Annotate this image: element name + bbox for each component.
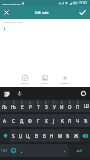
button[interactable]: А xyxy=(0,114,9,127)
button[interactable]: Л xyxy=(66,114,74,127)
staticText: , xyxy=(21,148,22,153)
staticText: Checklist xyxy=(20,82,29,84)
button[interactable]: Ш xyxy=(82,100,90,112)
staticText: 8 xyxy=(61,101,63,105)
staticText: Otero Mobile 3G xyxy=(2,2,21,5)
staticText: Mar 26, 2019, 11:55 xyxy=(4,21,23,24)
button[interactable]: Image xyxy=(35,75,54,84)
button[interactable]: 2 xyxy=(9,100,18,112)
button[interactable]: В xyxy=(32,129,40,142)
staticText: М xyxy=(58,133,63,139)
button[interactable]: Enter xyxy=(68,144,90,157)
staticText: Р xyxy=(29,104,32,110)
button[interactable]: Н xyxy=(48,129,56,142)
staticText: Џ xyxy=(19,133,23,139)
button[interactable]: Save xyxy=(74,6,90,19)
staticText: Ј xyxy=(53,118,55,124)
button[interactable]: Ж xyxy=(72,129,80,142)
button[interactable]: ?123 xyxy=(0,144,9,157)
staticText: Ѕ xyxy=(12,133,15,139)
button[interactable]: Ц xyxy=(24,129,32,142)
staticText: 6 xyxy=(45,101,47,105)
staticText: В xyxy=(35,133,38,139)
button[interactable]: Settings xyxy=(79,89,88,98)
button[interactable]: . xyxy=(60,144,68,157)
staticText: З xyxy=(45,104,48,110)
button[interactable]: 6 xyxy=(42,100,50,112)
staticText: . xyxy=(64,148,65,153)
staticText: Ђ xyxy=(66,133,70,139)
staticText: Image xyxy=(41,82,48,84)
button[interactable]: К xyxy=(58,114,66,127)
button[interactable]: Checklist xyxy=(15,75,34,84)
staticText: Н xyxy=(50,133,54,139)
staticText: Т xyxy=(37,104,40,110)
staticText: ?123 xyxy=(1,149,8,153)
button[interactable]: С xyxy=(9,114,18,127)
staticText: Edit note xyxy=(35,11,49,15)
button[interactable]: Ђ xyxy=(64,129,72,142)
staticText: О xyxy=(68,104,72,110)
button[interactable]: Ф xyxy=(26,114,34,127)
button[interactable]: Ћ xyxy=(82,114,90,127)
button[interactable]: 0 xyxy=(74,100,82,112)
staticText: 3 xyxy=(21,101,23,105)
staticText: Ж xyxy=(74,133,79,139)
staticText: Љ xyxy=(2,104,7,110)
button[interactable]: 8 xyxy=(58,100,66,112)
staticText: 5 xyxy=(37,101,39,105)
staticText: Е xyxy=(21,104,24,110)
button[interactable]: 7 xyxy=(50,100,58,112)
staticText: 9 xyxy=(69,101,71,105)
button[interactable]: Ѕ xyxy=(10,129,17,142)
button[interactable]: Д xyxy=(18,114,26,127)
staticText: У xyxy=(53,104,56,110)
button[interactable]: Emoji xyxy=(9,144,17,157)
button[interactable]: Џ xyxy=(17,129,24,142)
button[interactable]: 4 xyxy=(26,100,34,112)
button[interactable]: Shift xyxy=(0,129,10,142)
staticText: 0 xyxy=(77,101,79,105)
staticText: Ч xyxy=(76,118,80,124)
staticText: Ф xyxy=(28,118,32,124)
button[interactable]: Close xyxy=(0,6,12,19)
staticText: Х xyxy=(45,118,48,124)
staticText: И xyxy=(60,104,64,110)
staticText: 2 xyxy=(13,101,15,105)
staticText: П xyxy=(76,104,80,110)
staticText: К xyxy=(61,118,64,124)
staticText: А xyxy=(3,118,6,124)
button[interactable]: Stickers xyxy=(2,89,11,98)
button[interactable]: Б xyxy=(40,129,48,142)
staticText: Ћ xyxy=(84,118,88,124)
staticText: Ц xyxy=(26,133,30,139)
button[interactable]: Ч xyxy=(74,114,82,127)
button[interactable]: Ј xyxy=(50,114,58,127)
button[interactable]: Voice input xyxy=(15,89,24,98)
staticText: С xyxy=(12,118,15,124)
staticText: 1 xyxy=(4,101,6,105)
staticText: 4 xyxy=(29,101,31,105)
button[interactable]: 9 xyxy=(66,100,74,112)
button[interactable]: 3 xyxy=(18,100,26,112)
button[interactable]: Backspace xyxy=(80,129,90,142)
button[interactable]: Drawing xyxy=(55,75,74,84)
staticText: 7 xyxy=(53,101,55,105)
staticText: Л xyxy=(68,118,72,124)
staticText: Д xyxy=(20,118,24,124)
button[interactable]: 1 xyxy=(0,100,9,112)
button[interactable]: М xyxy=(56,129,64,142)
staticText: 17:31 xyxy=(79,1,88,5)
button[interactable]: , xyxy=(17,144,25,157)
button[interactable]: Г xyxy=(34,114,42,127)
button[interactable]: Х xyxy=(42,114,50,127)
staticText: Б xyxy=(43,133,46,139)
staticText: Drawing xyxy=(61,82,69,84)
staticText: Њ xyxy=(11,104,16,110)
staticText: Г xyxy=(37,118,40,124)
staticText: Ш xyxy=(84,103,89,109)
button[interactable]: 5 xyxy=(34,100,42,112)
